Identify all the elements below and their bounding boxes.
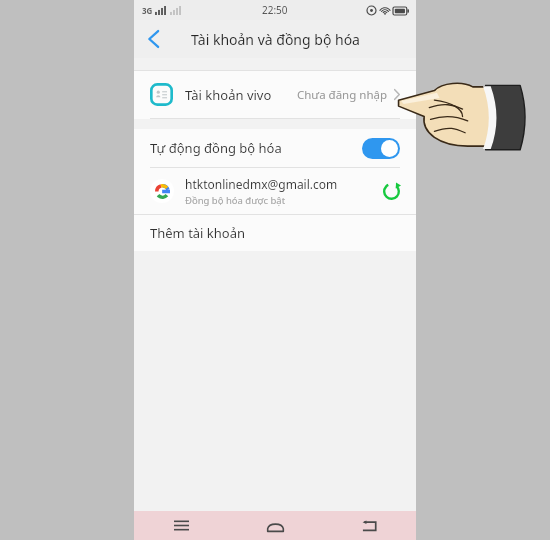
staticText: Đồng bộ hóa được bật [185,194,286,207]
button[interactable]: Tự động đồng bộ hóa [134,129,416,167]
staticText: 22:50 [262,3,288,17]
staticText: Tài khoản vivo [185,86,272,104]
staticText: Tài khoản và đồng bộ hóa [191,30,360,49]
staticText: Thêm tài khoản [150,224,246,242]
button[interactable]: Recent apps [134,511,228,540]
button[interactable]: htktonlinedmx@gmail.com [134,168,416,214]
staticText: 3G [142,5,153,16]
button[interactable]: Auto sync on [362,138,400,159]
button[interactable]: Tài khoản vivo [134,71,416,118]
button[interactable]: Back [134,20,172,58]
staticText: Tự động đồng bộ hóa [150,139,282,157]
button[interactable]: Home [228,511,322,540]
button[interactable]: Back [322,511,416,540]
staticText: Chưa đăng nhập [297,87,388,103]
button[interactable]: Thêm tài khoản [134,215,416,251]
other: Syncing [383,183,400,200]
staticText: htktonlinedmx@gmail.com [185,176,338,192]
